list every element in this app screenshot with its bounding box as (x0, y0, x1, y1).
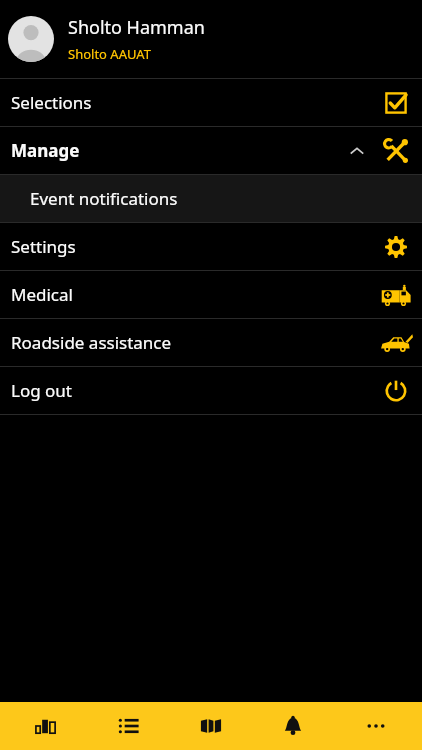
button[interactable]: Map (175, 702, 247, 750)
button[interactable]: Dashboard (10, 702, 82, 750)
button[interactable]: Settings (0, 223, 422, 270)
button[interactable]: Log out (0, 367, 422, 414)
staticText: Sholto AAUAT (68, 45, 151, 63)
button[interactable]: Notifications (257, 702, 329, 750)
button[interactable]: Selections (0, 79, 422, 126)
staticText: Selections (11, 91, 92, 114)
other: Log out (379, 374, 413, 408)
button[interactable]: Sholto Hamman (0, 0, 422, 78)
button[interactable]: Medical (0, 271, 422, 318)
other: Roadside assistance (379, 326, 413, 360)
staticText: Sholto Hamman (68, 15, 205, 40)
button[interactable]: Roadside assistance (0, 319, 422, 366)
staticText: Settings (11, 235, 76, 258)
other: Selections (379, 86, 413, 120)
button[interactable]: More (340, 702, 412, 750)
staticText: Manage (11, 139, 80, 162)
other: Settings (379, 230, 413, 264)
staticText: Log out (11, 379, 72, 402)
button[interactable]: Manage (0, 127, 422, 174)
staticText: Event notifications (30, 187, 178, 210)
other: Medical (379, 278, 413, 312)
button[interactable]: Event notifications (0, 175, 422, 222)
staticText: Medical (11, 283, 73, 306)
staticText: Roadside assistance (11, 331, 172, 354)
button[interactable]: List (93, 702, 165, 750)
